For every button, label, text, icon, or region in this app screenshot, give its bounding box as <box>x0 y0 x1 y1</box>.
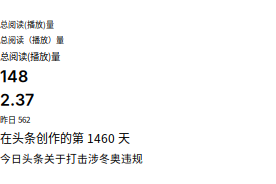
staticText: 总阅读(播放)量 <box>0 49 60 63</box>
staticText: 今日头条关于打击涉冬奥违规 <box>0 150 143 166</box>
staticText: 在头条创作的第 1460 天 <box>0 129 130 146</box>
staticText: 总阅读(播放)量 <box>0 18 54 30</box>
staticText: 总阅读（播放）量 <box>0 34 64 45</box>
staticText: 148 <box>0 67 28 86</box>
staticText: 2.37 <box>0 90 34 109</box>
staticText: 昨日 562 <box>0 113 30 125</box>
